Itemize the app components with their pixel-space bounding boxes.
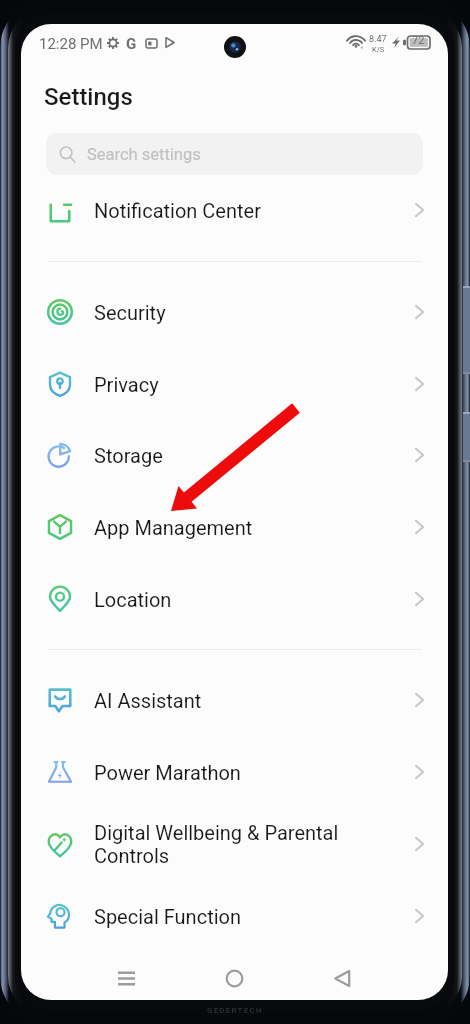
button[interactable]: AI Assistant — [21, 664, 448, 736]
button[interactable]: Security — [21, 276, 448, 348]
button[interactable]: Privacy — [21, 348, 448, 420]
staticText: Security — [94, 301, 166, 324]
staticText: Location — [94, 588, 172, 611]
staticText: Special Function — [94, 905, 241, 928]
button[interactable]: App Management — [21, 491, 448, 563]
button[interactable]: Search settings — [46, 133, 423, 175]
staticText: Power Marathon — [94, 761, 241, 784]
staticText: App Management — [94, 516, 253, 539]
button[interactable]: Storage — [21, 419, 448, 491]
button[interactable]: Notification Center — [21, 174, 448, 246]
staticText: Search settings — [87, 145, 201, 164]
button[interactable]: Home — [180, 955, 288, 1000]
staticText: Settings — [44, 83, 133, 111]
staticText: Notification Center — [94, 199, 261, 222]
staticText: AI Assistant — [94, 689, 202, 712]
staticText: GEDERTECH — [207, 1006, 263, 1015]
staticText: Digital Wellbeing & Parental — [94, 821, 339, 844]
button[interactable]: Digital Wellbeing & Parental — [21, 808, 448, 880]
staticText: G — [126, 35, 137, 53]
staticText: Privacy — [94, 373, 159, 396]
button[interactable]: Location — [21, 563, 448, 635]
button[interactable]: Back — [288, 955, 396, 1000]
button[interactable]: Special Function — [21, 880, 448, 952]
button[interactable]: Power Marathon — [21, 736, 448, 808]
staticText: 8.47 — [369, 34, 387, 45]
staticText: 12:28 PM — [39, 35, 103, 53]
staticText: K/S — [372, 45, 385, 54]
staticText: 72 — [412, 34, 425, 47]
staticText: Controls — [94, 844, 170, 867]
staticText: Storage — [94, 444, 163, 467]
button[interactable]: Recent apps — [73, 955, 180, 1000]
